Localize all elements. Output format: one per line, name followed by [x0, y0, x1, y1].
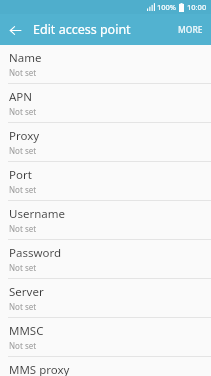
button[interactable]: MMSC [0, 318, 211, 357]
staticText: 10:00 [187, 2, 207, 12]
staticText: APN [9, 89, 33, 105]
button[interactable]: Proxy [0, 123, 211, 162]
staticText: MORE [178, 24, 203, 36]
staticText: MMS proxy [9, 362, 70, 376]
button[interactable]: Server [0, 279, 211, 318]
staticText: Not set [9, 184, 37, 195]
staticText: Username [9, 206, 65, 222]
staticText: Not set [9, 340, 37, 351]
staticText: Not set [9, 301, 37, 312]
staticText: 100% [157, 2, 177, 12]
staticText: Not set [9, 106, 37, 117]
staticText: Proxy [9, 128, 40, 144]
staticText: Password [9, 245, 62, 261]
staticText: Not set [9, 67, 37, 78]
staticText: Edit access point [33, 21, 131, 38]
button[interactable]: Username [0, 201, 211, 240]
button[interactable]: Password [0, 240, 211, 279]
button[interactable]: MMS proxy [0, 357, 211, 376]
staticText: Server [9, 284, 44, 300]
button[interactable]: APN [0, 84, 211, 123]
button[interactable]: MORE [170, 14, 211, 45]
button[interactable]: Name [0, 45, 211, 84]
staticText: Not set [9, 262, 37, 273]
staticText: MMSC [9, 323, 44, 339]
staticText: Name [9, 50, 42, 66]
staticText: Not set [9, 223, 37, 234]
button[interactable]: Port [0, 162, 211, 201]
staticText: Not set [9, 145, 37, 156]
staticText: Port [9, 167, 32, 183]
button[interactable]: Navigate up [3, 18, 27, 42]
